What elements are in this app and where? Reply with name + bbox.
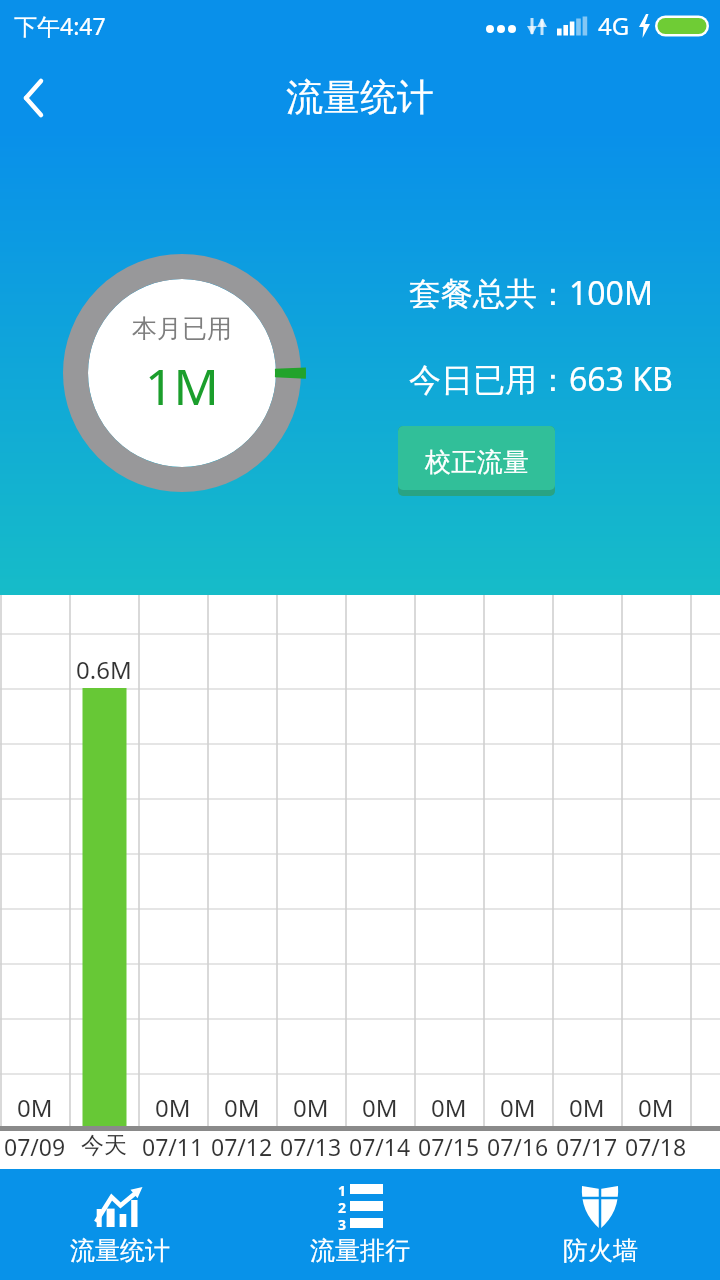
- staticText: 本月已用: [132, 313, 232, 344]
- staticText: 07/11: [142, 1131, 204, 1162]
- staticText: 4G: [598, 9, 630, 42]
- staticText: 0M: [17, 1091, 53, 1124]
- staticText: 流量统计: [286, 74, 434, 121]
- staticText: 1M: [145, 352, 219, 420]
- staticText: 0.6M: [76, 653, 132, 686]
- staticText: 07/17: [556, 1131, 618, 1162]
- staticText: 流量排行: [310, 1235, 410, 1266]
- staticText: 3: [338, 1215, 347, 1231]
- staticText: 0M: [431, 1091, 467, 1124]
- staticText: 1: [338, 1181, 347, 1197]
- staticText: 今日已用：663 KB: [409, 357, 673, 401]
- staticText: 防火墙: [563, 1235, 638, 1266]
- staticText: 下午4:47: [14, 10, 106, 41]
- button[interactable]: [12, 76, 56, 120]
- staticText: 07/13: [280, 1131, 342, 1162]
- button[interactable]: 1: [240, 1169, 480, 1280]
- staticText: 今天: [81, 1131, 127, 1160]
- button[interactable]: 流量统计: [0, 1169, 240, 1280]
- staticText: 校正流量: [425, 446, 529, 479]
- staticText: 07/12: [211, 1131, 273, 1162]
- staticText: 0M: [500, 1091, 536, 1124]
- staticText: 0M: [293, 1091, 329, 1124]
- staticText: 0M: [638, 1091, 674, 1124]
- button[interactable]: 防火墙: [480, 1169, 720, 1280]
- staticText: 07/16: [487, 1131, 549, 1162]
- staticText: 0M: [155, 1091, 191, 1124]
- staticText: 07/15: [418, 1131, 480, 1162]
- staticText: 0M: [224, 1091, 260, 1124]
- staticText: 套餐总共：100M: [409, 271, 653, 315]
- staticText: 07/09: [4, 1131, 66, 1162]
- staticText: 0M: [569, 1091, 605, 1124]
- staticText: 07/18: [625, 1131, 687, 1162]
- button[interactable]: 校正流量: [398, 426, 555, 496]
- staticText: 流量统计: [70, 1235, 170, 1266]
- staticText: 07/14: [349, 1131, 411, 1162]
- staticText: 0M: [362, 1091, 398, 1124]
- staticText: 2: [338, 1198, 347, 1214]
